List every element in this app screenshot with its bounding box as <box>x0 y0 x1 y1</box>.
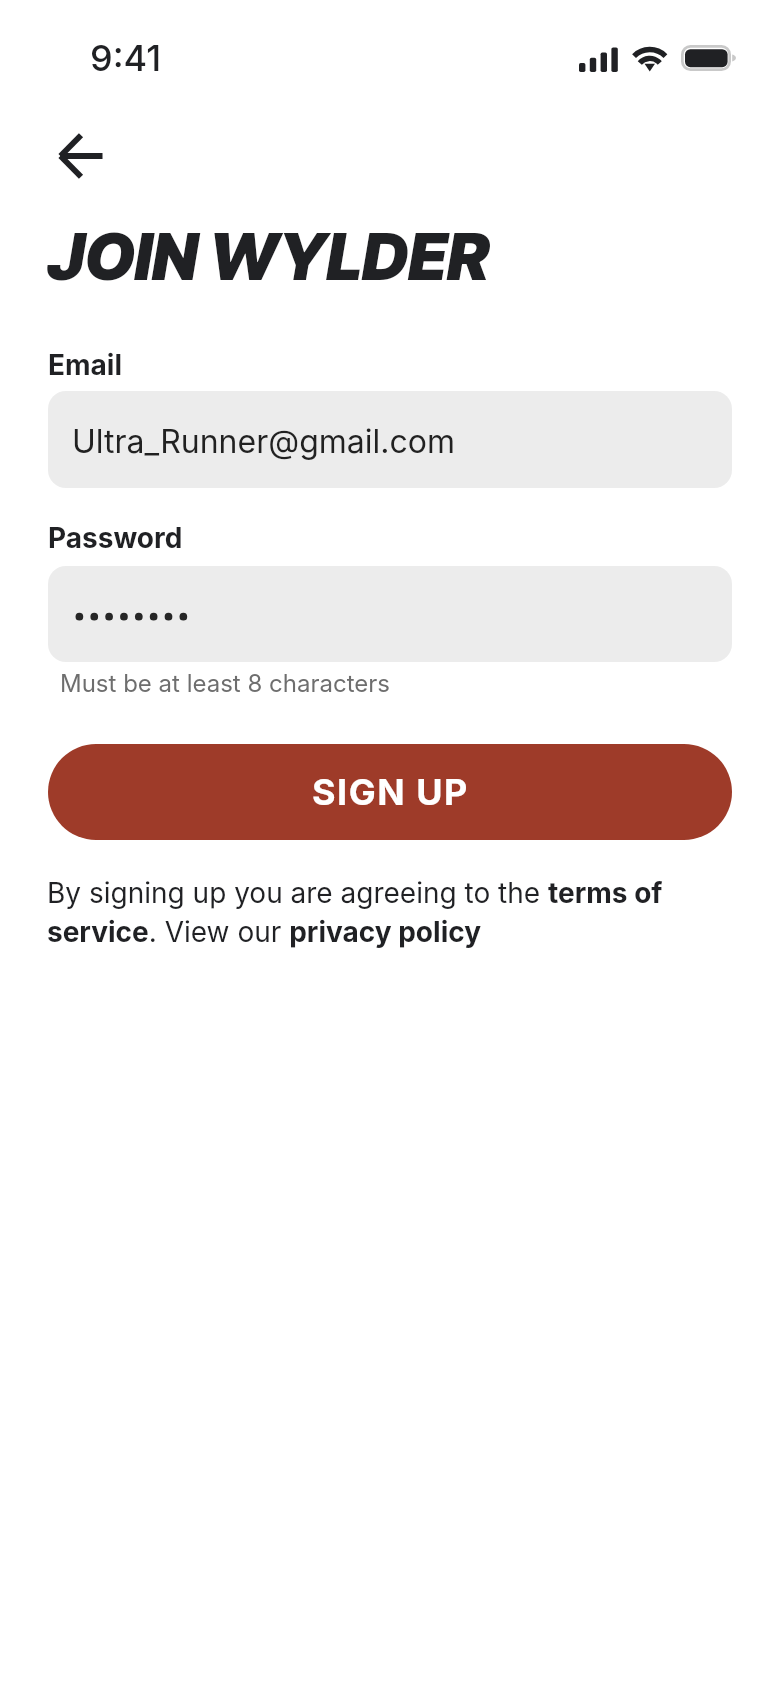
button[interactable]: SIGN UP <box>48 744 732 840</box>
staticText: SIGN UP <box>312 770 469 814</box>
other: Cellular signal <box>579 46 618 72</box>
staticText: Ultra_Runner@gmail.com <box>72 422 455 461</box>
staticText: By signing up you are agreeing to the te… <box>47 876 707 949</box>
other: Battery <box>681 45 739 73</box>
staticText: Must be at least 8 characters <box>60 669 390 698</box>
staticText: JOIN WYLDER <box>48 217 490 296</box>
staticText: 9:41 <box>90 36 162 80</box>
other: Wi-Fi <box>630 44 670 74</box>
button[interactable]: Password <box>48 566 732 662</box>
staticText: Password <box>48 521 183 555</box>
staticText: Email <box>48 348 122 382</box>
button[interactable]: Ultra_Runner@gmail.com <box>48 391 732 488</box>
button[interactable]: By signing up you are agreeing to the te… <box>47 876 707 949</box>
button[interactable]: Back <box>36 131 126 181</box>
